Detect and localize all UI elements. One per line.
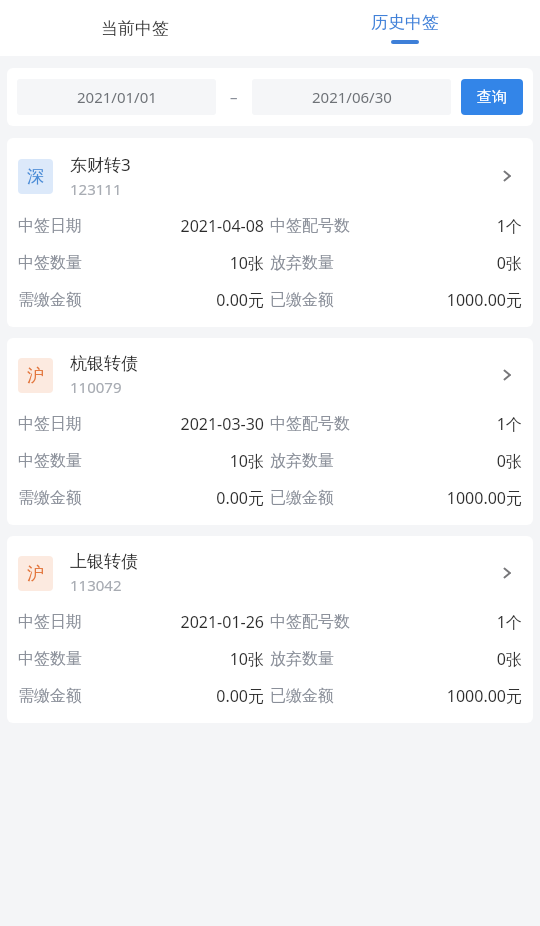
staticText: 历史中签 <box>371 12 439 33</box>
staticText: 1000.00元 <box>334 685 522 707</box>
button[interactable]: 当前中签 <box>0 0 270 56</box>
staticText: 中签日期 <box>18 216 82 236</box>
staticText: 中签配号数 <box>270 414 350 434</box>
staticText: 1000.00元 <box>334 487 522 509</box>
staticText: 中签数量 <box>18 451 82 471</box>
staticText: 0.00元 <box>82 289 264 311</box>
staticText: 1000.00元 <box>334 289 522 311</box>
button[interactable]: 深 <box>7 138 533 327</box>
staticText: 1个 <box>350 611 522 633</box>
button[interactable]: 查看详情 <box>492 161 522 191</box>
staticText: 深 <box>27 166 44 187</box>
staticText: 2021-03-30 <box>82 413 264 435</box>
staticText: 已缴金额 <box>270 290 334 310</box>
staticText: – <box>230 87 238 107</box>
staticText: 中签日期 <box>18 612 82 632</box>
staticText: 当前中签 <box>101 18 169 39</box>
button[interactable]: 2021/06/30 <box>252 79 451 115</box>
button[interactable]: 2021/01/01 <box>17 79 216 115</box>
staticText: 杭银转债 <box>70 353 138 374</box>
staticText: 0张 <box>334 648 522 670</box>
staticText: 需缴金额 <box>18 290 82 310</box>
staticText: 113042 <box>70 575 122 595</box>
staticText: 10张 <box>82 252 264 274</box>
staticText: 需缴金额 <box>18 686 82 706</box>
button[interactable]: 沪 <box>7 338 533 525</box>
staticText: 2021-04-08 <box>82 215 264 237</box>
staticText: 0张 <box>334 252 522 274</box>
button[interactable]: 查看详情 <box>492 558 522 588</box>
staticText: 放弃数量 <box>270 253 334 273</box>
staticText: 中签日期 <box>18 414 82 434</box>
staticText: 已缴金额 <box>270 686 334 706</box>
staticText: 已缴金额 <box>270 488 334 508</box>
staticText: 1个 <box>350 215 522 237</box>
staticText: 2021-01-26 <box>82 611 264 633</box>
staticText: 2021/01/01 <box>77 87 157 107</box>
staticText: 需缴金额 <box>18 488 82 508</box>
staticText: 10张 <box>82 450 264 472</box>
button[interactable]: 查看详情 <box>492 360 522 390</box>
staticText: 123111 <box>70 179 122 199</box>
staticText: 2021/06/30 <box>312 87 392 107</box>
staticText: 查询 <box>477 88 507 107</box>
staticText: 10张 <box>82 648 264 670</box>
button[interactable]: 历史中签 <box>270 0 540 56</box>
staticText: 放弃数量 <box>270 451 334 471</box>
staticText: 0.00元 <box>82 685 264 707</box>
staticText: 中签配号数 <box>270 216 350 236</box>
staticText: 1个 <box>350 413 522 435</box>
staticText: 中签数量 <box>18 649 82 669</box>
staticText: 110079 <box>70 377 122 397</box>
staticText: 0.00元 <box>82 487 264 509</box>
staticText: 0张 <box>334 450 522 472</box>
staticText: 中签配号数 <box>270 612 350 632</box>
staticText: 东财转3 <box>70 153 131 176</box>
staticText: 沪 <box>27 365 44 386</box>
staticText: 中签数量 <box>18 253 82 273</box>
button[interactable]: 查询 <box>461 79 523 115</box>
button[interactable]: 沪 <box>7 536 533 723</box>
staticText: 上银转债 <box>70 551 138 572</box>
staticText: 沪 <box>27 563 44 584</box>
staticText: 放弃数量 <box>270 649 334 669</box>
